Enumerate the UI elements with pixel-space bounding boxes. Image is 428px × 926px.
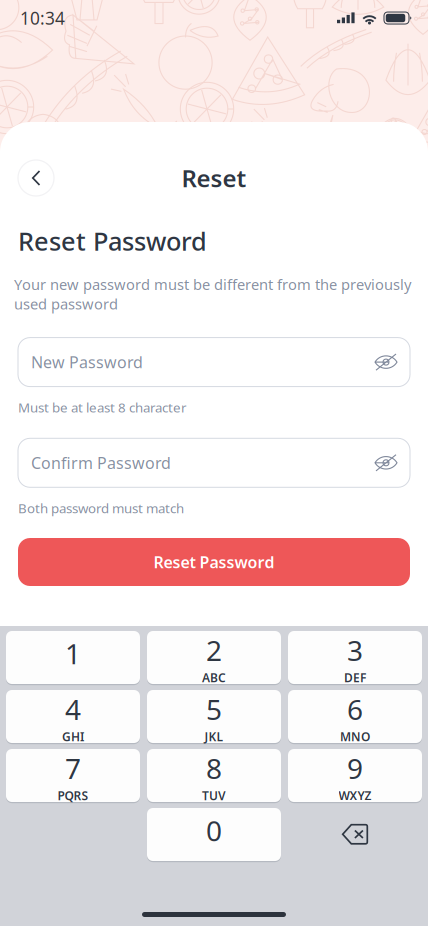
staticText: DEF xyxy=(344,670,366,685)
button[interactable]: 5 xyxy=(147,690,281,743)
button[interactable]: 7 xyxy=(6,749,140,802)
staticText: New Password xyxy=(31,351,143,373)
button[interactable]: Reset Password xyxy=(18,538,410,586)
button[interactable]: 4 xyxy=(6,690,140,743)
staticText: MNO xyxy=(340,729,370,744)
staticText: 7 xyxy=(65,749,81,787)
staticText: 10:34 xyxy=(20,6,65,29)
staticText: 5 xyxy=(206,690,222,728)
button[interactable]: Show password xyxy=(366,441,402,484)
button[interactable]: 8 xyxy=(147,749,281,802)
staticText: GHI xyxy=(62,729,84,744)
staticText: Your new password must be different from… xyxy=(14,275,411,314)
staticText: JKL xyxy=(204,729,223,744)
staticText: 1 xyxy=(65,635,81,672)
staticText: 0 xyxy=(206,812,222,849)
button[interactable]: 3 xyxy=(288,631,422,684)
staticText: Reset Password xyxy=(18,224,207,258)
staticText: ABC xyxy=(202,670,226,685)
staticText: 6 xyxy=(347,690,363,728)
button[interactable]: 9 xyxy=(288,749,422,802)
staticText: 2 xyxy=(206,631,222,669)
button[interactable]: Show password xyxy=(366,341,402,384)
button[interactable]: 1 xyxy=(6,631,140,684)
staticText: Reset xyxy=(181,162,246,194)
staticText: Must be at least 8 character xyxy=(18,399,187,416)
staticText: PQRS xyxy=(57,788,88,803)
button[interactable]: Back xyxy=(18,160,54,196)
staticText: 4 xyxy=(65,690,81,728)
button[interactable]: Delete xyxy=(288,808,422,861)
staticText: WXYZ xyxy=(338,788,371,803)
staticText: Both password must match xyxy=(18,499,184,517)
staticText: 8 xyxy=(206,749,222,787)
button[interactable]: 0 xyxy=(147,808,281,861)
staticText: Confirm Password xyxy=(31,452,171,473)
staticText: 3 xyxy=(347,631,363,669)
staticText: 9 xyxy=(347,749,363,787)
button[interactable]: 6 xyxy=(288,690,422,743)
staticText: Reset Password xyxy=(153,551,274,573)
button[interactable]: 2 xyxy=(147,631,281,684)
staticText: TUV xyxy=(202,788,226,803)
